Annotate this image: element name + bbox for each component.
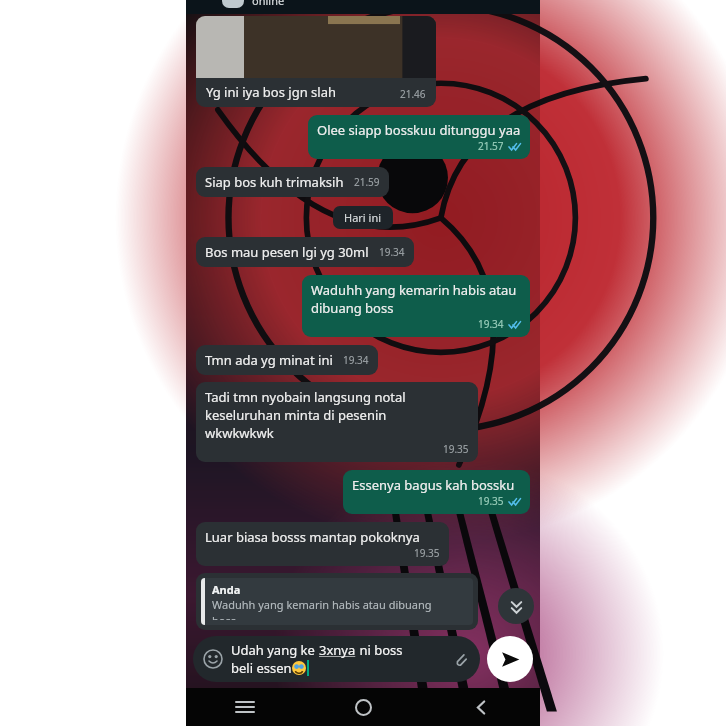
button[interactable]: Luar biasa bosss mantap pokoknya <box>196 522 449 566</box>
button[interactable]: Yg ini iya bos jgn slah <box>196 16 436 107</box>
staticText: 19.35 <box>414 546 440 560</box>
button[interactable]: Back <box>422 688 540 726</box>
button[interactable]: Attach <box>448 647 472 671</box>
staticText: Hari ini <box>344 210 382 225</box>
staticText: Anda <box>212 582 241 597</box>
button[interactable]: Anda <box>196 573 478 630</box>
staticText: Waduhh yang kemarin habis atau dibuang b… <box>311 281 517 317</box>
staticText: Waduhh yang kemarin habis atau dibuang b… <box>212 597 432 620</box>
button[interactable]: Waduhh yang kemarin habis atau dibuang b… <box>302 275 530 337</box>
staticText: Yg ini iya bos jgn slah <box>206 83 337 101</box>
button[interactable]: Siap bos kuh trimaksih <box>196 167 389 197</box>
staticText: 19.35 <box>443 442 469 456</box>
staticText: ni boss <box>356 641 403 659</box>
staticText: Udah yang ke <box>231 641 319 659</box>
staticText: beli essen <box>231 659 292 677</box>
staticText: 19.34 <box>379 245 405 259</box>
staticText: Essenya bagus kah bossku <box>352 476 515 494</box>
staticText: 19.34 <box>478 317 504 331</box>
button[interactable]: Emoji <box>193 636 480 682</box>
staticText: 21.46 <box>400 87 426 101</box>
staticText: online <box>252 0 285 7</box>
staticText: 19.35 <box>478 494 504 508</box>
button[interactable]: Home <box>304 688 422 726</box>
staticText: Tmn ada yg minat ini <box>205 351 333 369</box>
staticText: 21.57 <box>478 139 504 153</box>
staticText: Tadi tmn nyobain langsung notal keseluru… <box>205 388 406 442</box>
button[interactable]: Tadi tmn nyobain langsung notal keseluru… <box>196 382 478 462</box>
button[interactable]: Essenya bagus kah bossku <box>343 470 530 514</box>
button[interactable]: Emoji <box>201 647 225 671</box>
staticText: Luar biasa bosss mantap pokoknya <box>205 528 420 546</box>
button[interactable]: Tmn ada yg minat ini <box>196 345 378 375</box>
button[interactable]: Bos mau pesen lgi yg 30ml <box>196 237 414 267</box>
button[interactable]: Scroll to bottom <box>498 588 534 624</box>
staticText: 19.34 <box>343 353 369 367</box>
button[interactable]: Send <box>487 636 533 682</box>
staticText: 21.59 <box>354 175 380 189</box>
button[interactable]: Recents <box>186 688 304 726</box>
staticText: Siap bos kuh trimaksih <box>205 173 344 191</box>
staticText: Bos mau pesen lgi yg 30ml <box>205 243 369 261</box>
staticText: Olee siapp bosskuu ditunggu yaa <box>317 121 521 139</box>
button[interactable]: Olee siapp bosskuu ditunggu yaa <box>308 115 530 159</box>
staticText: 3xnya <box>319 641 356 659</box>
